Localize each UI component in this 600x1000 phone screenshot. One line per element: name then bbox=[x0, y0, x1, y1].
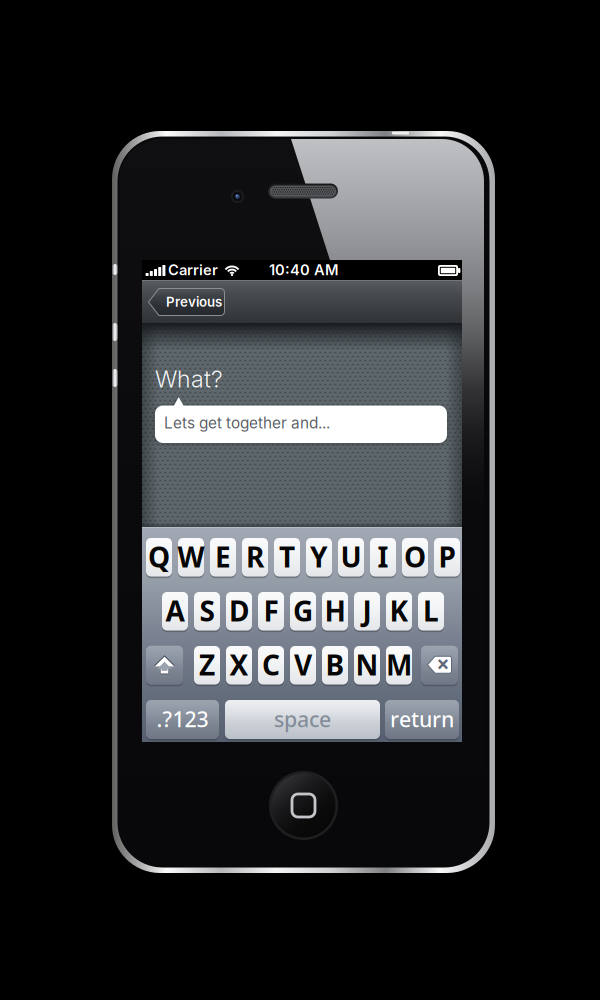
staticText: Z bbox=[199, 646, 215, 683]
button[interactable]: V bbox=[290, 645, 316, 685]
staticText: space bbox=[274, 705, 331, 733]
staticText: B bbox=[325, 646, 344, 683]
button[interactable]: Shift bbox=[146, 645, 183, 685]
staticText: R bbox=[246, 538, 264, 575]
button[interactable]: C bbox=[258, 645, 284, 685]
button[interactable]: P bbox=[434, 537, 460, 577]
button[interactable]: I bbox=[370, 537, 396, 577]
button[interactable]: space bbox=[225, 699, 380, 740]
staticText: L bbox=[423, 592, 439, 629]
button[interactable]: W bbox=[178, 537, 204, 577]
staticText: V bbox=[294, 646, 312, 683]
staticText: K bbox=[389, 592, 408, 629]
staticText: P bbox=[438, 538, 455, 575]
staticText: J bbox=[362, 592, 371, 629]
button[interactable]: G bbox=[290, 591, 316, 631]
staticText: N bbox=[355, 646, 378, 683]
staticText: H bbox=[324, 592, 345, 629]
staticText: F bbox=[263, 592, 278, 629]
staticText: M bbox=[386, 646, 412, 683]
button[interactable]: Lets get together and... bbox=[155, 397, 447, 443]
button[interactable]: Delete bbox=[421, 645, 458, 685]
staticText: E bbox=[215, 538, 231, 575]
staticText: × bbox=[436, 649, 449, 679]
staticText: Y bbox=[310, 538, 328, 575]
button[interactable]: D bbox=[226, 591, 252, 631]
staticText: .?123 bbox=[156, 705, 208, 733]
staticText: A bbox=[165, 592, 184, 629]
staticText: D bbox=[229, 592, 249, 629]
button[interactable]: L bbox=[418, 591, 444, 631]
button[interactable]: return bbox=[385, 699, 459, 740]
staticText: Previous bbox=[166, 294, 222, 310]
button[interactable]: Q bbox=[146, 537, 172, 577]
button[interactable]: A bbox=[162, 591, 188, 631]
button[interactable]: S bbox=[194, 591, 220, 631]
staticText: O bbox=[404, 538, 426, 575]
button[interactable]: X bbox=[226, 645, 252, 685]
button[interactable]: K bbox=[386, 591, 412, 631]
button[interactable]: H bbox=[322, 591, 348, 631]
button[interactable]: B bbox=[322, 645, 348, 685]
button[interactable]: E bbox=[210, 537, 236, 577]
staticText: Lets get together and... bbox=[164, 414, 330, 432]
button[interactable]: O bbox=[402, 537, 428, 577]
staticText: X bbox=[229, 646, 248, 683]
staticText: S bbox=[199, 592, 214, 629]
button[interactable]: T bbox=[274, 537, 300, 577]
staticText: T bbox=[279, 538, 295, 575]
staticText: Carrier bbox=[168, 261, 218, 279]
staticText: G bbox=[293, 592, 313, 629]
button[interactable]: R bbox=[242, 537, 268, 577]
staticText: 10:40 AM bbox=[269, 261, 339, 279]
button[interactable]: F bbox=[258, 591, 284, 631]
button[interactable]: .?123 bbox=[146, 699, 219, 740]
button[interactable]: M bbox=[386, 645, 412, 685]
staticText: Q bbox=[148, 538, 170, 575]
button[interactable]: Y bbox=[306, 537, 332, 577]
staticText: C bbox=[262, 646, 280, 683]
button[interactable]: U bbox=[338, 537, 364, 577]
button[interactable]: Z bbox=[194, 645, 220, 685]
button[interactable]: Previous bbox=[148, 288, 225, 316]
staticText: What? bbox=[155, 365, 223, 393]
button[interactable]: N bbox=[354, 645, 380, 685]
button[interactable]: J bbox=[354, 591, 380, 631]
staticText: W bbox=[177, 538, 204, 575]
staticText: U bbox=[340, 538, 361, 575]
staticText: I bbox=[377, 538, 388, 575]
button[interactable]: Home bbox=[269, 771, 338, 840]
staticText: return bbox=[390, 705, 454, 733]
